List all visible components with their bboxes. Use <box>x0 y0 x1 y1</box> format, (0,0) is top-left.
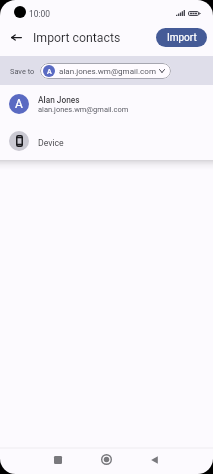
staticText: alan.jones.wm@gmail.com <box>38 105 129 114</box>
button[interactable]: Back <box>5 26 27 48</box>
button[interactable]: Recents <box>44 447 72 472</box>
staticText: Import contacts <box>33 31 121 45</box>
staticText: A <box>47 67 52 75</box>
staticText: 10:00 <box>29 9 51 19</box>
staticText: A <box>15 97 23 111</box>
staticText: Import <box>167 32 197 44</box>
staticText: Save to <box>10 67 35 76</box>
button[interactable]: Device <box>0 123 213 159</box>
button[interactable]: A <box>0 85 213 123</box>
staticText: alan.jones.wm@gmail.com <box>59 67 156 76</box>
button[interactable]: Back <box>140 447 168 472</box>
staticText: Device <box>38 138 64 148</box>
button[interactable]: A <box>40 63 171 79</box>
staticText: Alan Jones <box>38 95 80 105</box>
button[interactable]: Import <box>156 28 207 47</box>
button[interactable]: Home <box>92 447 120 472</box>
